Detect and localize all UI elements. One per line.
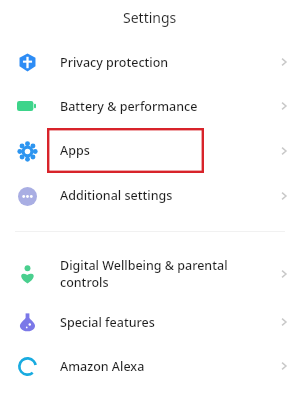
button[interactable]: Special features [0,300,300,344]
staticText: Additional settings [60,187,173,204]
button[interactable]: Apps [0,128,300,173]
button[interactable]: Additional settings [0,173,300,218]
staticText: Digital Wellbeing & parental controls [60,257,228,291]
staticText: Special features [60,314,155,331]
staticText: Privacy protection [60,54,169,71]
staticText: Battery & performance [60,98,198,115]
button[interactable]: Battery & performance [0,84,300,128]
button[interactable]: Digital Wellbeing & parental controls [0,248,300,300]
button[interactable]: Amazon Alexa [0,344,300,388]
button[interactable]: Privacy protection [0,40,300,84]
staticText: Amazon Alexa [60,358,145,375]
staticText: Settings [123,8,177,27]
staticText: Apps [60,142,90,159]
